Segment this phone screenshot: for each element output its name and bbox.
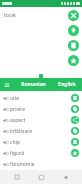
button[interactable]: Copy (71, 127, 79, 135)
button[interactable]: Romanian (14, 78, 52, 91)
staticText: aspect (10, 117, 71, 124)
button[interactable]: uite (0, 93, 82, 103)
button[interactable]: înfățișare (0, 126, 82, 136)
staticText: fizionomie (10, 161, 35, 168)
button[interactable]: Close (68, 10, 79, 21)
button[interactable]: English (52, 78, 82, 91)
button[interactable]: Dictionary (68, 40, 79, 51)
staticText: look (4, 11, 17, 19)
button[interactable]: privire (0, 104, 82, 114)
button[interactable]: aspect (0, 115, 82, 125)
button[interactable]: Favorite (68, 55, 79, 66)
staticText: înfățișare (10, 128, 71, 135)
button[interactable]: Back (58, 170, 72, 184)
button[interactable]: Home (34, 170, 48, 184)
button[interactable]: fizionomie (0, 159, 82, 169)
button[interactable]: figură (0, 148, 82, 158)
staticText: figură (10, 150, 71, 157)
button[interactable]: Share (71, 116, 79, 124)
staticText: Romanian (21, 81, 46, 88)
button[interactable]: Copy (71, 105, 79, 113)
button[interactable]: Menu (0, 78, 14, 91)
staticText: privire (10, 106, 71, 113)
staticText: English (58, 81, 76, 88)
button[interactable]: chip (0, 137, 82, 147)
button[interactable]: Download (68, 25, 79, 36)
button[interactable]: Dictionary (71, 94, 79, 102)
staticText: chip (10, 139, 71, 146)
button[interactable]: Favorite (71, 149, 79, 157)
button[interactable]: Recents (10, 170, 24, 184)
staticText: uite (10, 95, 71, 102)
button[interactable]: Dictionary (71, 138, 79, 146)
